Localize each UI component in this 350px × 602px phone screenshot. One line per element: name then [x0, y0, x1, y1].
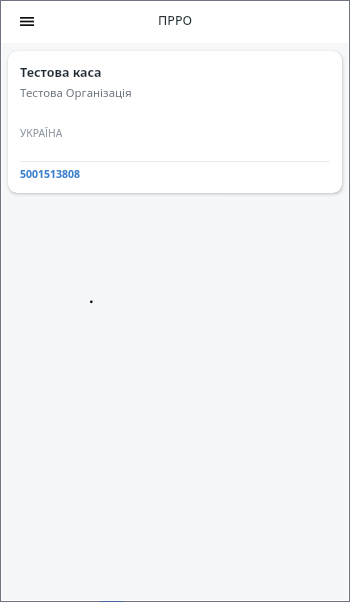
button[interactable]: Тестова каса: [8, 51, 342, 193]
staticText: Тестова каса: [20, 64, 102, 81]
button[interactable]: Open navigation menu: [12, 6, 42, 36]
button[interactable]: 5001513808: [20, 167, 81, 181]
staticText: УКРАЇНА: [20, 126, 63, 140]
staticText: Тестова Організація: [20, 85, 132, 101]
staticText: ПРРО: [158, 12, 193, 29]
